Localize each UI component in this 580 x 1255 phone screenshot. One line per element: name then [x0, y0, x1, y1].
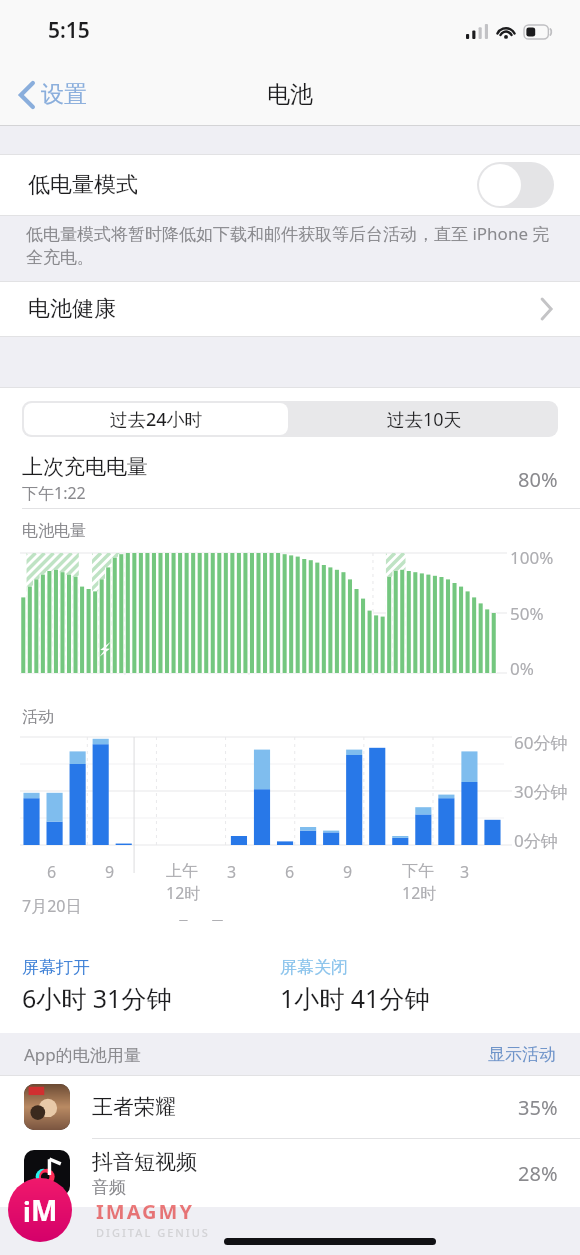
staticText: 上午 12时 — [166, 861, 201, 904]
staticText: 3 — [460, 861, 470, 883]
staticText: 音频 — [92, 1177, 126, 1198]
staticText: 100% — [510, 546, 554, 569]
staticText: 过去10天 — [387, 407, 462, 432]
staticText: 9 — [343, 861, 353, 883]
staticText: 60分钟 — [514, 731, 568, 754]
staticText: 过去24小时 — [110, 407, 203, 432]
staticText: 6小时 31分钟 — [22, 981, 172, 1015]
staticText: 抖音短视频 — [92, 1149, 197, 1175]
staticText: 7月21日 — [166, 916, 226, 921]
staticText: 电池 — [267, 80, 313, 109]
staticText: 30分钟 — [514, 780, 568, 803]
staticText: 35% — [518, 1094, 558, 1121]
staticText: 活动 — [22, 707, 54, 727]
staticText: 0分钟 — [514, 829, 558, 852]
staticText: App的电池用量 — [24, 1043, 141, 1066]
staticText: 9 — [105, 861, 115, 883]
staticText: 电池健康 — [28, 295, 116, 323]
staticText: 显示活动 — [488, 1044, 556, 1065]
staticText: 下午1:22 — [22, 482, 86, 504]
staticText: 低电量模式将暂时降低如下载和邮件获取等后台活动，直至 iPhone 完全充电。 — [26, 222, 558, 268]
button[interactable]: 低电量模式 — [0, 154, 580, 216]
button[interactable]: 显示活动 — [464, 1040, 580, 1069]
staticText: 0% — [510, 657, 534, 680]
staticText: 王者荣耀 — [92, 1094, 176, 1120]
button[interactable]: 低电量模式开关 — [477, 162, 554, 208]
button[interactable]: 设置 — [14, 74, 93, 115]
staticText: 电池电量 — [22, 521, 86, 541]
staticText: IMAGMY — [96, 1198, 194, 1225]
staticText: 低电量模式 — [28, 171, 138, 199]
staticText: 3 — [227, 861, 237, 883]
staticText: 6 — [285, 861, 295, 883]
staticText: i — [23, 1194, 31, 1229]
staticText: 设置 — [41, 80, 87, 109]
button[interactable]: 王者荣耀 — [0, 1076, 580, 1138]
button[interactable]: 电池健康 — [0, 281, 580, 337]
staticText: 下午 12时 — [402, 861, 437, 904]
staticText: 7月20日 — [22, 895, 82, 917]
staticText: 屏幕关闭 — [280, 957, 348, 978]
staticText: 上次充电电量 — [22, 454, 148, 480]
button[interactable]: 抖音短视频 — [0, 1139, 580, 1207]
staticText: M — [31, 1191, 58, 1229]
staticText: 5:15 — [48, 16, 90, 45]
button[interactable]: 过去10天 — [290, 401, 558, 437]
staticText: 80% — [518, 466, 558, 493]
button[interactable]: 过去24小时 — [24, 403, 288, 435]
staticText: 6 — [47, 861, 57, 883]
staticText: 屏幕打开 — [22, 957, 90, 978]
staticText: DIGITAL GENIUS — [96, 1225, 210, 1240]
button[interactable]: 上次充电电量 — [0, 450, 580, 508]
staticText: 1小时 41分钟 — [280, 981, 430, 1015]
staticText: 28% — [518, 1160, 558, 1187]
staticText: 50% — [510, 602, 544, 625]
